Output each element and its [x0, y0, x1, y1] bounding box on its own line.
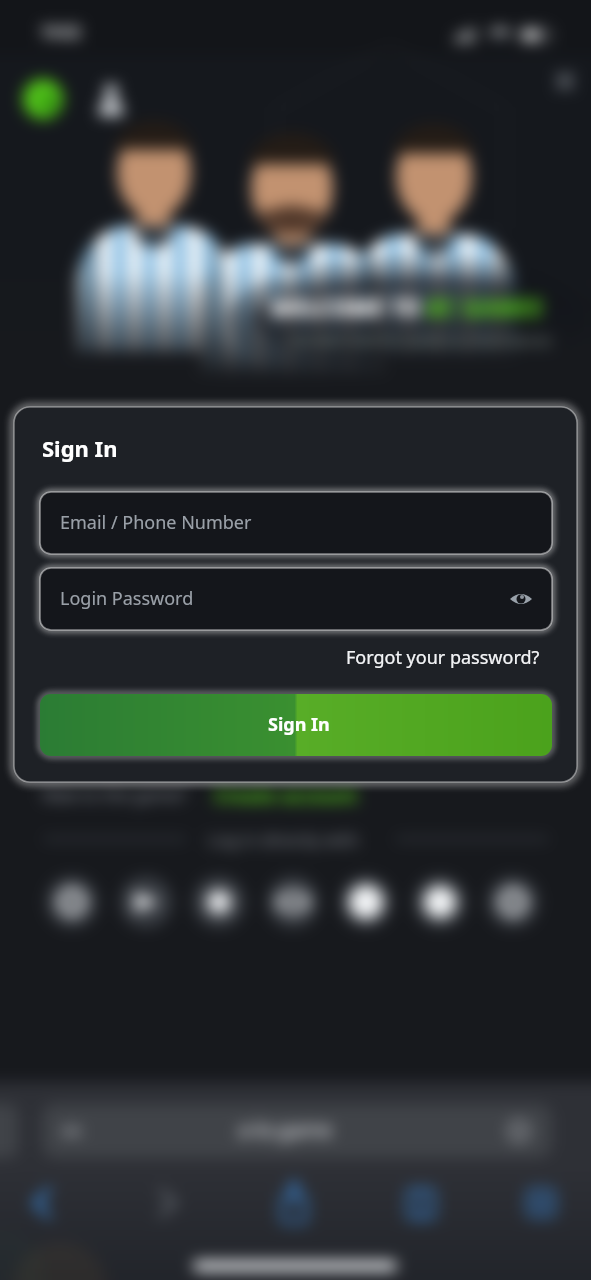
button[interactable] [487, 876, 539, 928]
button[interactable] [24, 1182, 64, 1222]
button[interactable] [340, 876, 392, 928]
button[interactable] [414, 876, 466, 928]
button[interactable] [42, 1104, 552, 1158]
staticText: Sign In [42, 433, 118, 463]
button[interactable] [267, 876, 319, 928]
button[interactable] [274, 1182, 314, 1222]
button[interactable] [496, 580, 544, 618]
button[interactable] [46, 876, 98, 928]
staticText: 19:02 [40, 21, 82, 43]
button[interactable]: Sign In [40, 694, 552, 756]
staticText: New to the game? [42, 783, 187, 806]
staticText: AA [62, 1120, 82, 1140]
button[interactable] [520, 1182, 560, 1222]
staticText: Forgot your password? [346, 645, 540, 670]
staticText: THE BEST CRYPTO CASINO & SPORTSBOOK [288, 332, 553, 350]
button[interactable] [400, 1182, 440, 1222]
button[interactable] [548, 64, 582, 98]
button[interactable]: Forgot your password? [342, 641, 536, 666]
staticText: WELCOME TO BC GAMES [270, 291, 543, 324]
button[interactable] [193, 876, 245, 928]
staticText: Log in directly with [208, 828, 359, 851]
staticText: Sign In [268, 712, 330, 737]
staticText: Create account [214, 783, 358, 809]
button[interactable]: Create account [210, 778, 354, 804]
staticText: Email / Phone Number [60, 510, 252, 535]
button[interactable]: Email / Phone Number [40, 492, 552, 554]
staticText: a-lo.game [238, 1116, 332, 1143]
button[interactable]: Login Password [40, 568, 552, 630]
button[interactable] [148, 1182, 188, 1222]
staticText: Login Password [60, 586, 194, 611]
button[interactable] [120, 876, 172, 928]
